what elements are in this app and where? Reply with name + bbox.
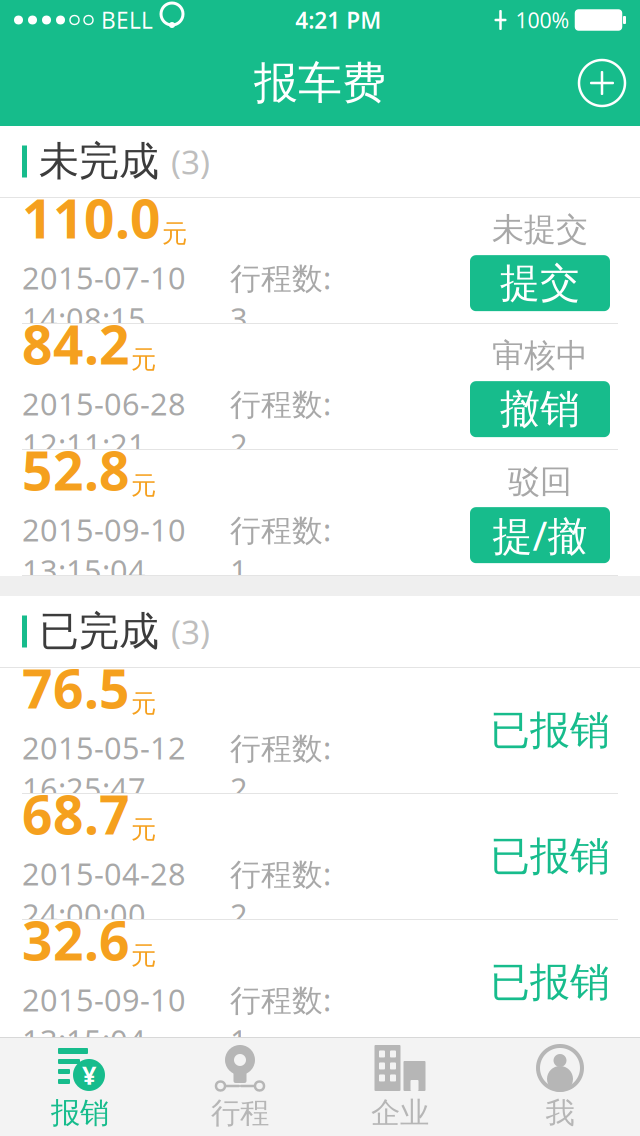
staticText: 报销 xyxy=(51,1095,109,1131)
staticText: 行程数: 1 xyxy=(230,509,331,591)
staticText: (3) xyxy=(171,609,210,654)
staticText: 76.5 xyxy=(22,652,130,723)
staticText: 报车费 xyxy=(254,56,386,110)
staticText: 已报销 xyxy=(490,706,610,755)
staticText: ¥ xyxy=(82,1058,96,1092)
staticText: 已完成 xyxy=(39,607,159,656)
staticText: 行程 xyxy=(211,1095,269,1131)
staticText: 2015-05-12 16:25:47 xyxy=(22,727,186,809)
staticText: 84.2 xyxy=(22,308,130,379)
staticText: 2015-06-28 12:11:21 xyxy=(22,383,186,465)
staticText: 提/撤 xyxy=(492,509,587,562)
staticText: 行程数: 3 xyxy=(230,257,331,339)
button[interactable]: 撤销 xyxy=(470,381,610,437)
staticText: 元 xyxy=(131,470,156,501)
staticText: 元 xyxy=(162,218,187,249)
staticText: BELL xyxy=(101,5,153,35)
staticText: 元 xyxy=(131,940,156,971)
staticText: 2015-09-10 13:15:04 xyxy=(22,979,186,1061)
button[interactable]: ¥ xyxy=(0,1037,160,1136)
staticText: 行程数: 2 xyxy=(230,727,331,809)
staticText: 2015-04-28 24:00:00 xyxy=(22,853,186,935)
staticText: 行程数: 2 xyxy=(230,383,331,465)
staticText: 已报销 xyxy=(490,958,610,1007)
staticText: 2015-07-10 14:08:15 xyxy=(22,257,186,339)
staticText: 2015-09-10 13:15:04 xyxy=(22,509,186,591)
staticText: 我 xyxy=(545,1095,574,1131)
staticText: 提交 xyxy=(500,259,580,308)
staticText: 元 xyxy=(131,814,156,845)
staticText: 企业 xyxy=(371,1095,429,1131)
staticText: (3) xyxy=(171,139,210,184)
staticText: 52.8 xyxy=(22,434,130,505)
staticText: 4:21 PM xyxy=(295,5,381,35)
button[interactable]: 添加 xyxy=(564,45,640,121)
staticText: 已报销 xyxy=(490,832,610,881)
staticText: 撤销 xyxy=(500,385,580,434)
button[interactable]: 提/撤 xyxy=(470,507,610,563)
staticText: 100% xyxy=(515,6,569,34)
staticText: 元 xyxy=(131,688,156,719)
staticText: 未完成 xyxy=(39,137,159,186)
button[interactable]: 行程 xyxy=(160,1037,320,1136)
staticText: 行程数: 1 xyxy=(230,979,331,1061)
staticText: 未提交 xyxy=(492,210,588,249)
staticText: 32.6 xyxy=(22,904,130,975)
button[interactable]: 提交 xyxy=(470,255,610,311)
staticText: 行程数: 2 xyxy=(230,853,331,935)
button[interactable]: 我 xyxy=(480,1037,640,1136)
button[interactable]: 企业 xyxy=(320,1037,480,1136)
staticText: 审核中 xyxy=(492,336,588,375)
staticText: 驳回 xyxy=(508,462,572,501)
staticText: 元 xyxy=(131,344,156,375)
staticText: 68.7 xyxy=(22,778,130,849)
staticText: 110.0 xyxy=(22,182,161,253)
